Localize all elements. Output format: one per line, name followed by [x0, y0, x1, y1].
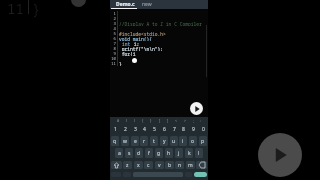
button[interactable]: p	[199, 136, 207, 146]
button[interactable]: 2	[121, 124, 129, 134]
button[interactable]: 6	[160, 124, 168, 134]
staticText: :	[200, 118, 201, 123]
button[interactable]: Demo.c	[113, 0, 137, 9]
staticText: g	[157, 150, 161, 157]
button[interactable]: u	[170, 136, 178, 146]
staticText: 5	[111, 31, 116, 36]
button[interactable]: m	[186, 161, 195, 169]
button[interactable]: {	[142, 118, 144, 123]
button[interactable]: Play video	[258, 133, 302, 177]
staticText: 2	[111, 16, 116, 21]
staticText: >	[184, 118, 187, 123]
button[interactable]: o	[189, 136, 197, 146]
button[interactable]: w	[121, 136, 129, 146]
button[interactable]: :	[200, 118, 201, 123]
staticText: l	[198, 150, 200, 157]
staticText: 8	[111, 46, 116, 51]
staticText: o	[191, 138, 195, 145]
button[interactable]: c	[144, 161, 153, 169]
button[interactable]: k	[185, 148, 193, 158]
button[interactable]: x	[134, 161, 143, 169]
button[interactable]: a	[115, 148, 123, 158]
button[interactable]: v	[155, 161, 164, 169]
staticText: 1	[111, 11, 116, 16]
button[interactable]: 9	[189, 124, 197, 134]
button[interactable]: e	[131, 136, 139, 146]
staticText: v	[158, 162, 161, 169]
button[interactable]: (	[126, 118, 128, 123]
button[interactable]: i	[179, 136, 187, 146]
button[interactable]: d	[135, 148, 143, 158]
button[interactable]: new	[139, 0, 155, 9]
staticText: 8	[182, 126, 185, 133]
staticText: b	[168, 162, 172, 169]
staticText: k	[188, 150, 191, 157]
staticText: {	[142, 118, 144, 123]
staticText: )	[134, 118, 136, 123]
button[interactable]: 8	[179, 124, 187, 134]
staticText: 9	[111, 51, 116, 56]
staticText: 11	[111, 61, 116, 66]
button[interactable]: 0	[199, 124, 207, 134]
button[interactable]: j	[175, 148, 183, 158]
button[interactable]: Shift	[111, 161, 122, 169]
button[interactable]: 1	[111, 124, 119, 134]
staticText: n	[178, 162, 182, 169]
staticText: j	[178, 150, 180, 157]
staticText: e	[134, 138, 137, 145]
button[interactable]: ]	[167, 118, 169, 123]
button[interactable]: }	[150, 118, 152, 123]
button[interactable]: r	[140, 136, 148, 146]
staticText: 1	[114, 126, 117, 133]
button[interactable]: 5	[150, 124, 158, 134]
button[interactable]: b	[165, 161, 174, 169]
button[interactable]: l	[195, 148, 203, 158]
button[interactable]: Run code	[190, 102, 203, 115]
button[interactable]: <	[175, 118, 178, 123]
button[interactable]: Enter	[194, 172, 207, 177]
button[interactable]: [	[159, 118, 161, 123]
staticText: 6	[111, 36, 116, 41]
staticText: [	[159, 118, 161, 123]
staticText: new	[142, 1, 152, 8]
staticText: 4	[143, 126, 146, 133]
staticText: c	[147, 162, 150, 169]
staticText: ;	[193, 118, 194, 123]
staticText: i;	[131, 41, 140, 46]
button[interactable]: )	[134, 118, 136, 123]
button[interactable]: 7	[170, 124, 178, 134]
button[interactable]: Backspace	[196, 161, 207, 169]
staticText: 5	[153, 126, 156, 133]
button[interactable]: >	[184, 118, 187, 123]
button[interactable]: s	[125, 148, 133, 158]
button[interactable]: z	[123, 161, 132, 169]
button[interactable]: f	[145, 148, 153, 158]
staticText: //Display A to Z in C Compiler	[119, 21, 202, 26]
staticText: q	[113, 138, 117, 145]
staticText: 2	[124, 126, 127, 133]
staticText: i	[182, 138, 184, 145]
button[interactable]: h	[165, 148, 173, 158]
button[interactable]: t	[150, 136, 158, 146]
button[interactable]: y	[160, 136, 168, 146]
staticText: m	[188, 162, 193, 169]
staticText: 4	[111, 26, 116, 31]
staticText: 7	[173, 126, 176, 133]
button[interactable]: g	[155, 148, 163, 158]
staticText: f	[148, 150, 150, 157]
button[interactable]: #	[117, 118, 120, 123]
button[interactable]: ;	[193, 118, 194, 123]
staticText: int	[122, 41, 131, 46]
staticText: 6	[163, 126, 166, 133]
staticText: u	[172, 138, 176, 145]
button[interactable]: 4	[140, 124, 148, 134]
staticText: d	[137, 150, 141, 157]
button[interactable]: n	[175, 161, 184, 169]
button[interactable]: 3	[131, 124, 139, 134]
button[interactable]: q	[111, 136, 119, 146]
